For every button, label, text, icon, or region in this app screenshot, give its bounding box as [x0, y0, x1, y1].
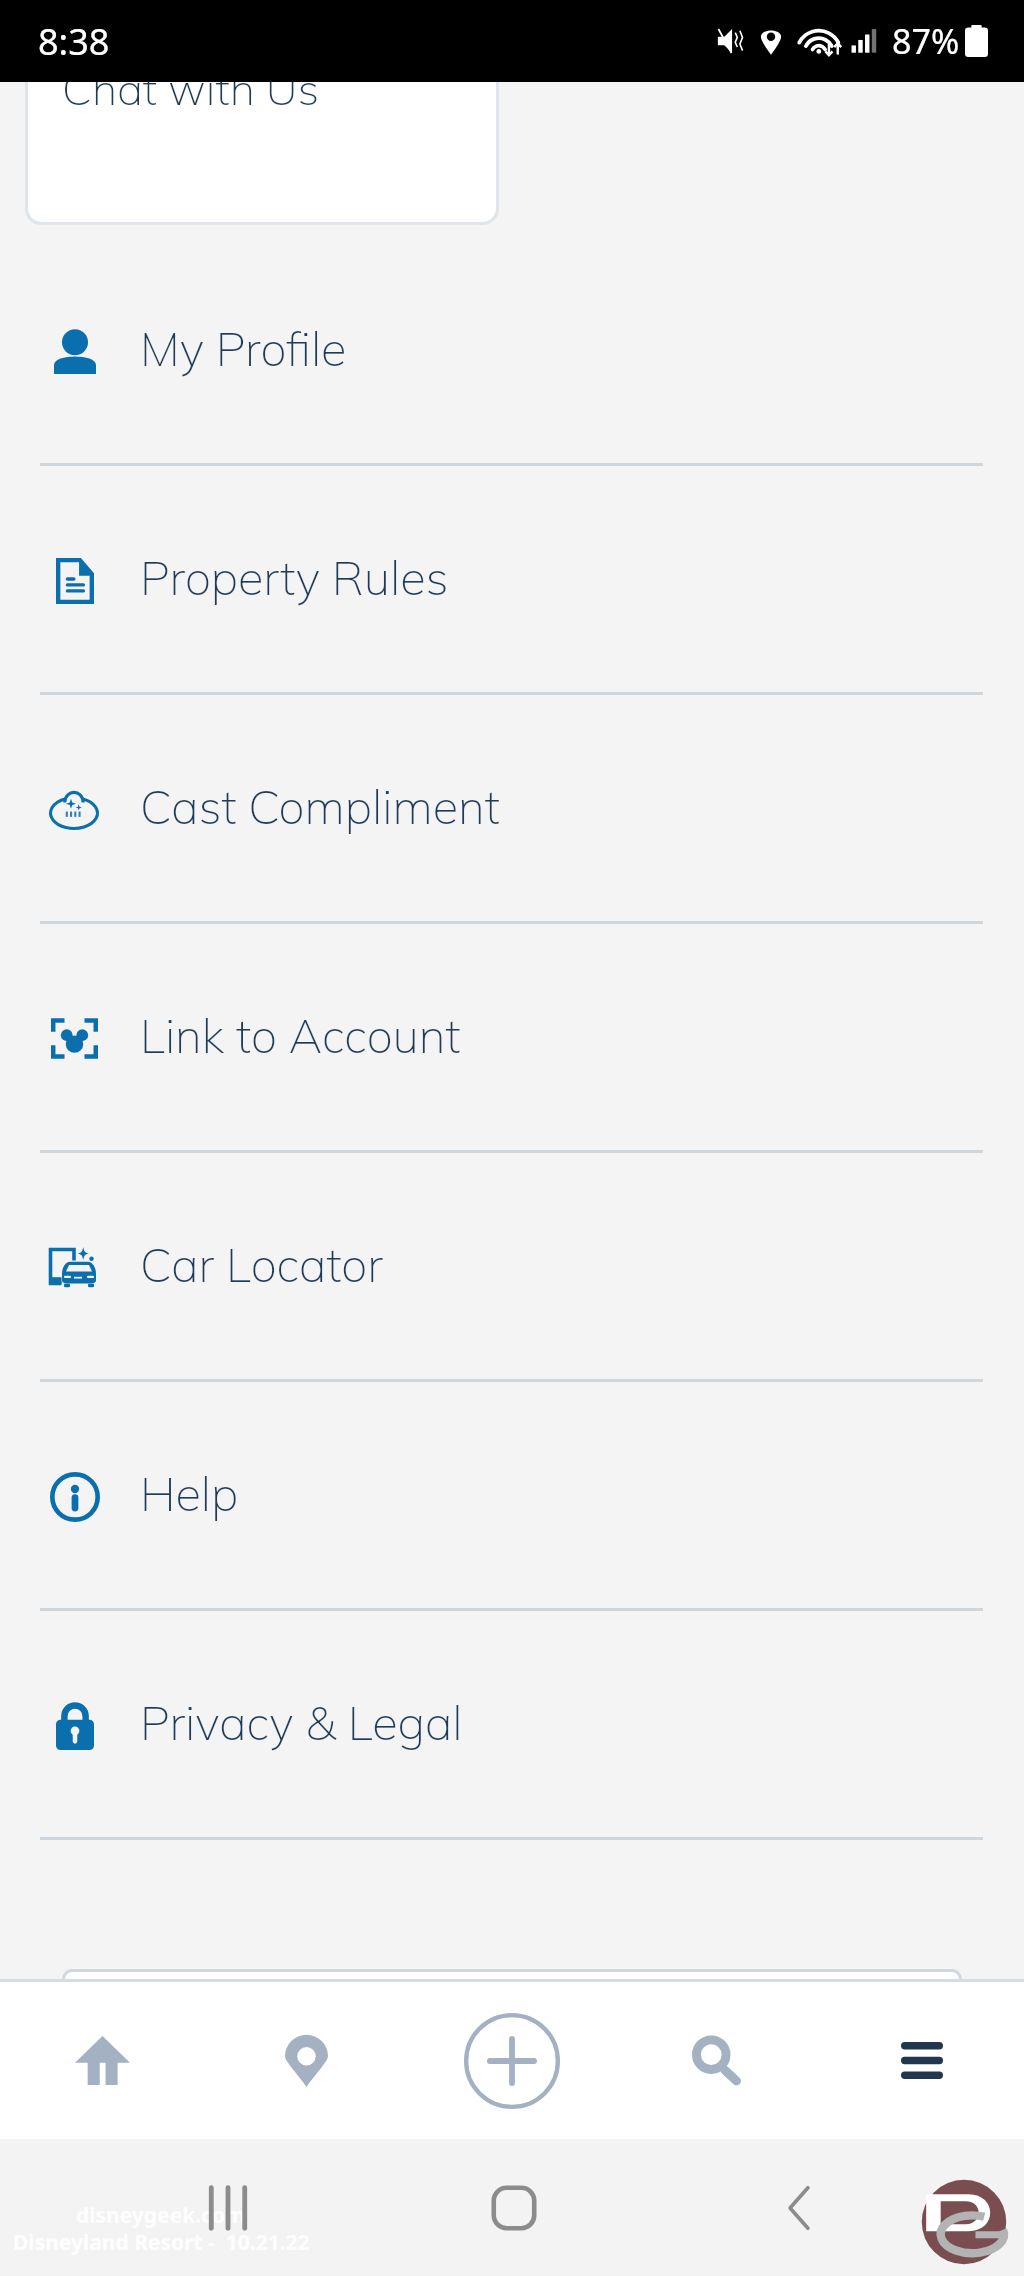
button[interactable]: Map: [204, 1982, 409, 2139]
button[interactable]: Property Rules: [0, 466, 1024, 695]
staticText: My Profile: [140, 319, 347, 378]
button[interactable]: My Profile: [0, 237, 1024, 466]
staticText: Chat with Us: [62, 82, 320, 116]
staticText: 8:38: [38, 17, 110, 66]
staticText: Disneyland Resort - 10.21.22: [13, 2228, 310, 2257]
staticText: Privacy & Legal: [140, 1693, 463, 1752]
button[interactable]: Search: [614, 1982, 819, 2139]
button[interactable]: Cast Compliment: [0, 695, 1024, 924]
button[interactable]: Add: [409, 1982, 614, 2139]
button[interactable]: Link to Account: [0, 924, 1024, 1153]
button[interactable]: Chat with Us: [28, 82, 496, 222]
staticText: Link to Account: [140, 1006, 461, 1065]
staticText: Cast Compliment: [140, 777, 500, 836]
button[interactable]: Menu: [819, 1982, 1024, 2139]
staticText: Car Locator: [140, 1235, 383, 1294]
button[interactable]: Car Locator: [0, 1153, 1024, 1382]
staticText: 87%: [892, 18, 960, 64]
staticText: disneygeek.com: [76, 2201, 246, 2230]
staticText: Property Rules: [140, 548, 449, 607]
button[interactable]: Home: [0, 1982, 204, 2139]
staticText: Help: [140, 1464, 239, 1523]
button[interactable]: Privacy & Legal: [0, 1611, 1024, 1840]
button[interactable]: Help: [0, 1382, 1024, 1611]
